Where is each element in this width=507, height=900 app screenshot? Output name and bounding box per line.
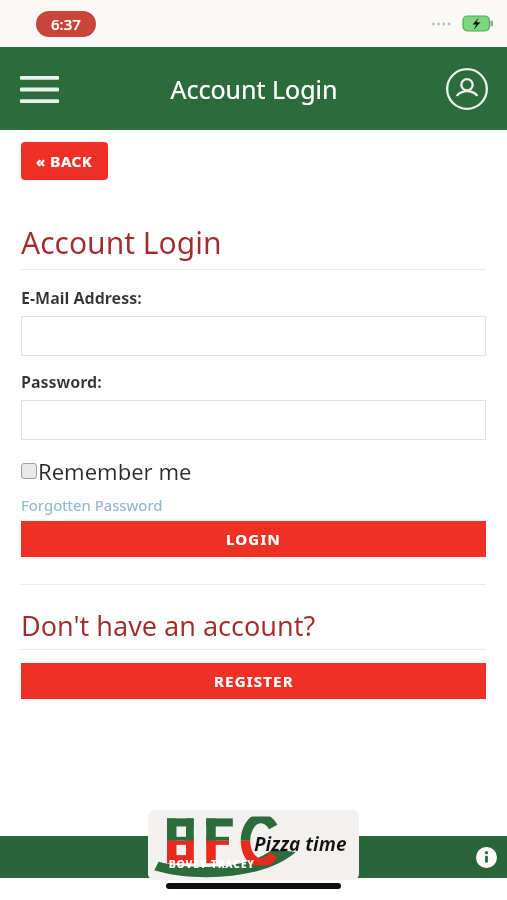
- button[interactable]: [21, 400, 486, 440]
- button[interactable]: Account: [439, 61, 495, 117]
- button[interactable]: Information: [465, 836, 507, 878]
- staticText: Account Login: [21, 222, 222, 263]
- staticText: REGISTER: [214, 671, 294, 691]
- staticText: E-Mail Address:: [21, 287, 142, 309]
- staticText: « BACK: [36, 151, 93, 171]
- button[interactable]: [21, 316, 486, 356]
- staticText: 6:37: [51, 14, 81, 34]
- button[interactable]: BFC Bovey Tracey Pizza Time: [148, 810, 359, 880]
- staticText: Account Login: [170, 72, 338, 106]
- staticText: Remember me: [38, 456, 192, 486]
- button[interactable]: REGISTER: [21, 663, 486, 699]
- button[interactable]: Remember me: [21, 456, 192, 486]
- staticText: Pizza time: [254, 831, 347, 857]
- button[interactable]: LOGIN: [21, 521, 486, 557]
- staticText: BOVEY TRACEY: [169, 857, 255, 871]
- button[interactable]: Forgotten Password: [21, 495, 163, 515]
- button[interactable]: Open navigation menu: [8, 58, 70, 120]
- staticText: LOGIN: [226, 529, 281, 549]
- staticText: Password:: [21, 371, 102, 393]
- button[interactable]: « BACK: [21, 142, 108, 180]
- staticText: Don't have an account?: [21, 607, 316, 644]
